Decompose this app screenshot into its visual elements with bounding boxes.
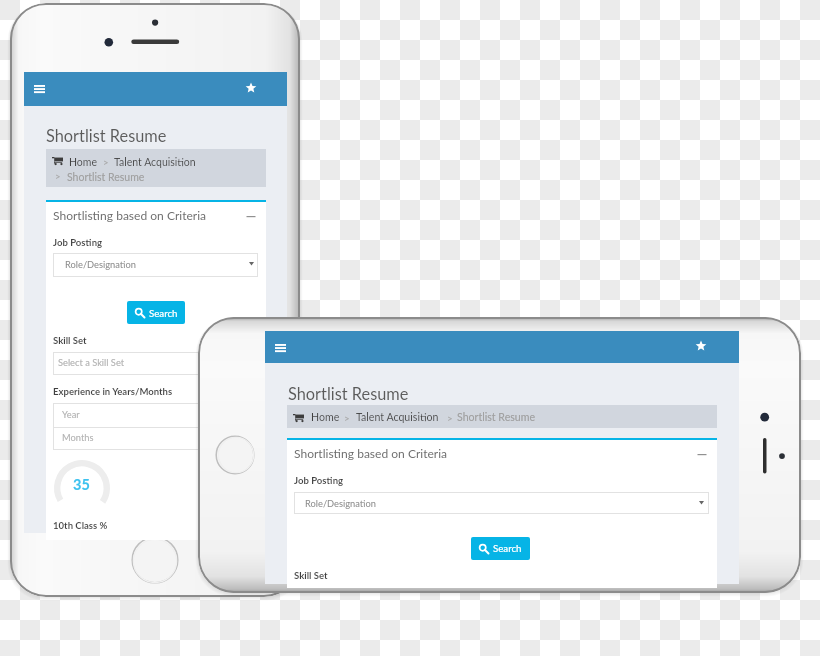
staticText: 35 xyxy=(73,476,90,493)
staticText: Months xyxy=(62,432,94,443)
staticText: Job Posting xyxy=(294,475,344,486)
button[interactable]: Favourites xyxy=(243,80,259,96)
button[interactable]: Collapse section xyxy=(696,447,710,461)
staticText: Home xyxy=(69,156,97,169)
staticText: Job Posting xyxy=(53,237,103,248)
staticText: Role/Designation xyxy=(65,259,137,270)
staticText: 10th Class % xyxy=(53,520,108,531)
button[interactable] xyxy=(287,405,717,428)
button[interactable] xyxy=(24,72,287,106)
staticText: Select a Skill Set xyxy=(58,357,125,368)
staticText: Shortlisting based on Criteria xyxy=(294,446,448,460)
staticText: > xyxy=(344,412,350,424)
button[interactable] xyxy=(294,492,709,514)
button[interactable] xyxy=(265,331,739,363)
staticText: Shortlisting based on Criteria xyxy=(53,208,207,222)
staticText: Role/Designation xyxy=(305,498,377,509)
staticText: Home xyxy=(311,411,340,424)
staticText: Shortlist Resume xyxy=(46,126,167,146)
staticText: Year xyxy=(62,409,80,420)
button[interactable] xyxy=(53,403,258,427)
staticText: > xyxy=(103,157,109,168)
staticText: Talent Acquisition xyxy=(356,411,439,424)
staticText: Skill Set xyxy=(294,570,328,581)
staticText: Experience in Years/Months xyxy=(53,386,173,397)
staticText: Skill Set xyxy=(53,335,87,346)
button[interactable] xyxy=(53,352,258,375)
button[interactable]: Open navigation menu xyxy=(271,340,290,356)
button[interactable]: Open navigation menu xyxy=(30,81,49,97)
button[interactable] xyxy=(471,537,530,560)
staticText: Search xyxy=(493,542,522,554)
button[interactable] xyxy=(46,149,266,187)
button[interactable] xyxy=(53,253,258,277)
staticText: Shortlist Resume xyxy=(288,384,409,404)
button[interactable] xyxy=(127,301,185,324)
staticText: Shortlist Resume xyxy=(457,411,536,424)
staticText: > xyxy=(55,171,61,182)
staticText: > xyxy=(447,412,453,424)
staticText: Shortlist Resume xyxy=(67,171,145,184)
button[interactable]: Favourites xyxy=(693,338,709,354)
staticText: Search xyxy=(149,307,178,319)
button[interactable]: Collapse section xyxy=(245,209,259,223)
staticText: Talent Acquisition xyxy=(114,156,196,169)
button[interactable] xyxy=(53,428,258,450)
